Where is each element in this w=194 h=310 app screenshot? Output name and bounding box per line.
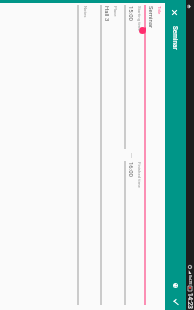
staticText: 15:00 (128, 6, 135, 21)
staticText: Hall 3 (104, 6, 111, 22)
staticText: 14:23 (186, 293, 194, 309)
button[interactable]: Notes (77, 5, 95, 305)
staticText: Starting time (137, 6, 142, 31)
staticText: Seminar (171, 26, 179, 50)
staticText: Place (113, 6, 118, 17)
button[interactable]: Place (100, 5, 118, 305)
staticText: VoLTE (188, 275, 192, 285)
button[interactable]: Save (168, 294, 184, 310)
staticText: Finished time (137, 162, 142, 188)
staticText: Title (157, 6, 162, 15)
staticText: 16:00 (128, 162, 135, 177)
staticText: Notes (83, 6, 88, 18)
button[interactable]: Starting time (124, 5, 142, 149)
staticText: Seminar (148, 6, 155, 29)
button[interactable]: Event colour (167, 277, 184, 294)
button[interactable]: Finished time (124, 161, 142, 305)
button[interactable]: Close (167, 4, 183, 20)
button[interactable]: Title (144, 5, 162, 305)
